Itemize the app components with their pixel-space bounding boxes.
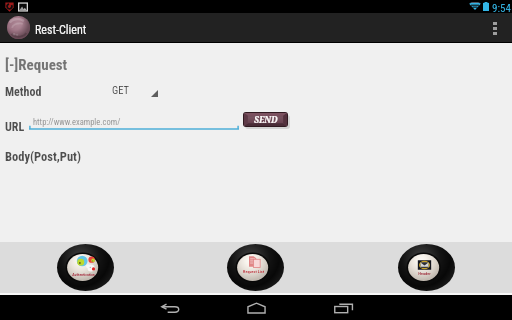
staticText: Rest-Client [35,23,87,37]
staticText: [-]Request [5,56,68,74]
button[interactable]: SEND [243,112,288,127]
staticText: http://www.example.com/ [33,117,121,127]
button[interactable]: Back [146,295,194,320]
button[interactable]: Home [232,295,280,320]
button[interactable]: More options [478,13,512,43]
staticText: Authentication [72,272,95,276]
staticText: 9:54 [492,2,511,15]
button[interactable]: Recent apps [319,295,367,320]
staticText: SEND [254,114,278,126]
staticText: URL [5,120,25,134]
staticText: Method [5,85,42,99]
staticText: Body(Post,Put) [5,149,81,164]
button[interactable]: Request List [227,244,284,291]
button[interactable]: GET [104,81,164,99]
staticText: Header [418,271,431,276]
staticText: Request List [243,269,264,274]
staticText: GET [112,84,129,96]
button[interactable]: Authentication [57,244,114,291]
button[interactable]: Header [398,244,455,291]
